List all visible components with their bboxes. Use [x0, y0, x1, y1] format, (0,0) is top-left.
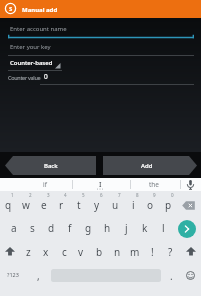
staticText: 3	[47, 192, 50, 198]
button[interactable]: Add	[103, 156, 197, 175]
staticText: w	[22, 198, 30, 212]
staticText: k	[142, 221, 148, 235]
staticText: g	[85, 221, 92, 235]
staticText: 4	[64, 192, 67, 198]
button[interactable]	[8, 42, 201, 56]
staticText: e	[41, 198, 47, 212]
staticText: ,	[37, 269, 40, 283]
button[interactable]: if	[20, 178, 70, 191]
staticText: a	[11, 221, 17, 235]
button[interactable]	[178, 220, 196, 238]
staticText: h	[104, 221, 111, 235]
staticText: y	[94, 198, 100, 212]
button[interactable]: the	[132, 178, 177, 191]
staticText: v	[78, 245, 84, 259]
staticText: 9	[153, 192, 156, 198]
button[interactable]	[8, 22, 201, 38]
staticText: Manual add	[22, 6, 58, 14]
staticText: Add	[141, 162, 153, 170]
staticText: Back	[44, 162, 58, 170]
staticText: b	[96, 245, 103, 259]
staticText: ?123	[7, 271, 19, 278]
staticText: !	[151, 245, 154, 259]
staticText: i	[132, 198, 135, 212]
staticText: q	[5, 198, 12, 212]
staticText: l	[162, 221, 165, 235]
button[interactable]	[186, 180, 195, 190]
staticText: o	[147, 198, 154, 212]
staticText: the	[149, 180, 160, 189]
staticText: u	[112, 198, 119, 212]
staticText: n	[114, 245, 121, 259]
staticText: m	[130, 245, 140, 259]
staticText: 0	[44, 72, 48, 81]
staticText: I	[99, 180, 102, 190]
staticText: c	[62, 245, 67, 259]
staticText: Enter account name	[10, 25, 67, 33]
staticText: j	[125, 221, 128, 235]
button[interactable]	[182, 201, 196, 210]
staticText: 8	[136, 192, 139, 198]
staticText: if	[43, 180, 47, 189]
staticText: Enter your key	[10, 43, 51, 51]
staticText: d	[48, 221, 55, 235]
staticText: S	[9, 5, 13, 13]
button[interactable]	[186, 271, 195, 280]
staticText: 1	[11, 192, 14, 198]
staticText: .	[170, 269, 173, 283]
staticText: 7	[118, 192, 121, 198]
staticText: ?	[168, 245, 173, 259]
staticText: f	[68, 221, 72, 235]
staticText: Counter value	[8, 74, 41, 81]
staticText: 0	[171, 192, 174, 198]
staticText: 6	[100, 192, 103, 198]
staticText: s	[30, 221, 35, 235]
staticText: t	[77, 198, 81, 212]
staticText: x	[43, 245, 49, 259]
staticText: z	[26, 245, 31, 259]
button[interactable]: I	[75, 178, 125, 191]
button[interactable]	[8, 58, 64, 70]
staticText: 5	[82, 192, 85, 198]
button[interactable]: Back	[5, 156, 96, 175]
staticText: r	[59, 198, 64, 212]
staticText: Counter-based	[10, 59, 53, 67]
staticText: p	[165, 198, 172, 212]
button[interactable]	[5, 247, 15, 256]
button[interactable]	[186, 247, 196, 256]
staticText: 2	[29, 192, 32, 198]
